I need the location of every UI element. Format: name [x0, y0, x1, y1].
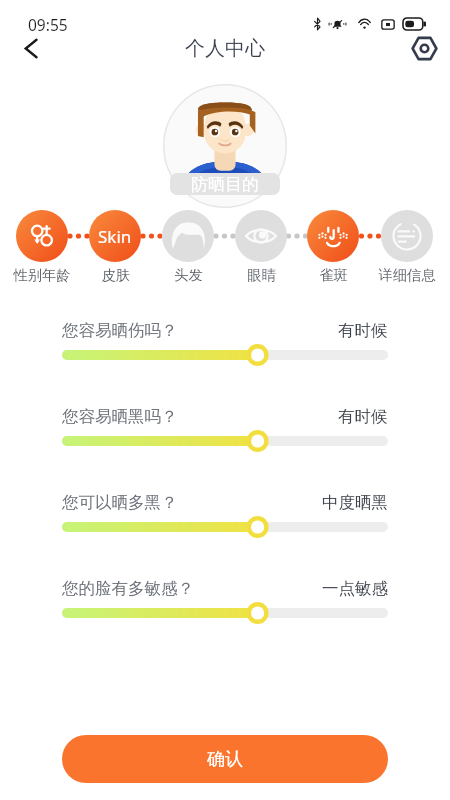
staticText: 您可以晒多黑？	[62, 492, 178, 513]
staticText: 个人中心	[185, 36, 265, 61]
staticText: 一点敏感	[322, 578, 388, 599]
staticText: 详细信息	[378, 266, 436, 284]
staticText: 您的脸有多敏感？	[62, 578, 194, 599]
button[interactable]: 确认	[62, 735, 388, 783]
staticText: 皮肤	[101, 266, 130, 284]
button[interactable]: 雀斑	[296, 210, 370, 284]
button[interactable]: Back	[9, 32, 53, 64]
staticText: 中度晒黑	[322, 492, 388, 513]
staticText: Skin	[98, 225, 132, 248]
staticText: 眼睛	[247, 266, 276, 284]
button[interactable]: 眼睛	[224, 210, 298, 284]
button[interactable]: 详细信息	[370, 210, 444, 284]
staticText: 有时候	[338, 320, 388, 341]
staticText: 您容易晒黑吗？	[62, 406, 178, 427]
button[interactable]: Skin	[78, 210, 152, 284]
button[interactable]: 头发	[151, 210, 225, 284]
button[interactable]: Settings	[404, 32, 444, 64]
staticText: 性别年龄	[13, 266, 71, 284]
staticText: 防晒目的	[191, 174, 259, 195]
staticText: 雀斑	[319, 266, 348, 284]
staticText: 09:55	[28, 14, 68, 35]
staticText: 确认	[207, 748, 243, 771]
staticText: 您容易晒伤吗？	[62, 320, 178, 341]
staticText: 有时候	[338, 406, 388, 427]
button[interactable]: 性别年龄	[5, 210, 79, 284]
staticText: 头发	[174, 266, 203, 284]
